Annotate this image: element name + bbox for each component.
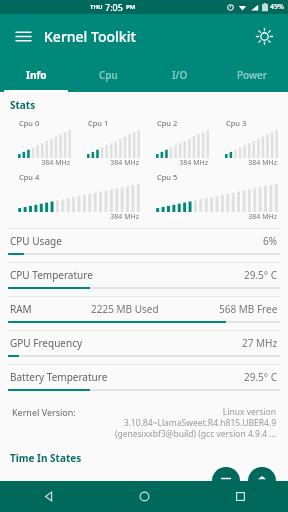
staticText: Cpu 2: [157, 118, 178, 128]
staticText: Stats: [10, 98, 36, 112]
staticText: CPU Usage: [10, 234, 62, 248]
button[interactable]: Info: [0, 58, 72, 92]
button[interactable]: GPU Frequency: [0, 330, 288, 364]
button[interactable]: Recent apps: [192, 481, 288, 512]
staticText: Info: [26, 68, 47, 82]
staticText: Cpu 5: [157, 172, 178, 182]
staticText: Cpu 1: [88, 118, 109, 128]
staticText: Cpu 0: [19, 118, 40, 128]
staticText: PM: [126, 3, 136, 11]
staticText: Battery Temperature: [10, 370, 108, 384]
staticText: Cpu: [99, 68, 118, 82]
staticText: 568 MB Free: [219, 302, 278, 316]
staticText: 384 MHz: [9, 212, 139, 222]
staticText: Power: [237, 68, 268, 82]
staticText: GPU Frequency: [10, 336, 83, 350]
button[interactable]: Cpu: [72, 58, 144, 92]
staticText: 29.5° C: [244, 268, 278, 282]
button[interactable]: Battery Temperature: [0, 364, 288, 398]
staticText: THU: [90, 3, 105, 11]
staticText: Cpu 3: [226, 118, 247, 128]
button[interactable]: I/O: [144, 58, 216, 92]
staticText: 384 MHz: [147, 212, 277, 222]
button[interactable]: Open navigation menu: [10, 23, 36, 49]
button[interactable]: Home: [96, 481, 192, 512]
staticText: RAM: [10, 302, 32, 316]
staticText: Kernel Version:: [12, 406, 76, 418]
staticText: 2225 MB Used: [91, 302, 159, 316]
button[interactable]: RAM: [0, 296, 288, 330]
staticText: 384 MHz: [9, 158, 70, 168]
staticText: 27 MHz: [242, 336, 278, 350]
staticText: CPU Temperature: [10, 268, 93, 282]
button[interactable]: CPU Temperature: [0, 262, 288, 296]
button[interactable]: Toggle brightness: [250, 22, 278, 50]
staticText: 384 MHz: [78, 158, 139, 168]
staticText: 384 MHz: [216, 158, 277, 168]
staticText: Kernel Toolkit: [44, 27, 136, 46]
button[interactable]: Collapse: [212, 467, 240, 495]
staticText: I/O: [172, 68, 188, 82]
staticText: 7:05: [105, 1, 126, 13]
staticText: 384 MHz: [147, 158, 208, 168]
staticText: Cpu 4: [19, 172, 40, 182]
staticText: Time In States: [10, 451, 82, 465]
staticText: 29.5° C: [244, 370, 278, 384]
button[interactable]: Scroll to top: [248, 467, 276, 495]
button[interactable]: Back: [0, 481, 96, 512]
staticText: Linux version 3.10.84~LlamaSweet.R4.h815…: [114, 406, 276, 439]
button[interactable]: Power: [216, 58, 288, 92]
button[interactable]: CPU Usage: [0, 228, 288, 262]
staticText: 49%: [270, 2, 284, 12]
staticText: 6%: [263, 234, 278, 248]
